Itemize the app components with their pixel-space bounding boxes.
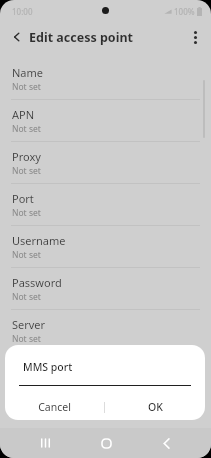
staticText: Not set <box>12 165 41 177</box>
staticText: Password <box>12 275 62 290</box>
staticText: Not set <box>12 123 41 135</box>
button[interactable]: Home <box>91 428 121 458</box>
staticText: APN <box>12 107 35 122</box>
button[interactable]: APN <box>0 100 211 142</box>
button[interactable]: Port <box>0 184 211 226</box>
button[interactable]: More options <box>184 26 206 48</box>
staticText: Not set <box>12 207 41 219</box>
button[interactable]: Password <box>0 268 211 310</box>
button[interactable]: Server <box>0 310 211 352</box>
button[interactable]: Recent apps <box>30 428 60 458</box>
staticText: Not set <box>12 333 41 345</box>
button[interactable]: Back <box>151 428 181 458</box>
staticText: Port <box>12 191 34 206</box>
staticText: Not set <box>12 291 41 303</box>
button[interactable]: Cancel <box>5 395 104 419</box>
staticText: Name <box>12 65 44 80</box>
staticText: Cancel <box>38 400 71 414</box>
button[interactable]: MMSC <box>0 352 211 394</box>
staticText: Proxy <box>12 149 41 164</box>
button[interactable]: Name <box>0 58 211 100</box>
staticText: Not set <box>12 375 41 387</box>
staticText: 100% <box>174 6 195 17</box>
button[interactable]: OK <box>105 395 205 419</box>
button[interactable]: Username <box>0 226 211 268</box>
staticText: OK <box>148 400 163 414</box>
staticText: Username <box>12 233 66 248</box>
staticText: MMS port <box>23 360 73 374</box>
staticText: MMSC <box>12 359 45 374</box>
button[interactable]: Proxy <box>0 142 211 184</box>
button[interactable]: Back <box>6 26 28 48</box>
staticText: Edit access point <box>29 29 133 46</box>
staticText: Not set <box>12 81 41 93</box>
staticText: Server <box>12 317 46 332</box>
staticText: 10:00 <box>12 6 33 17</box>
staticText: Not set <box>12 249 41 261</box>
